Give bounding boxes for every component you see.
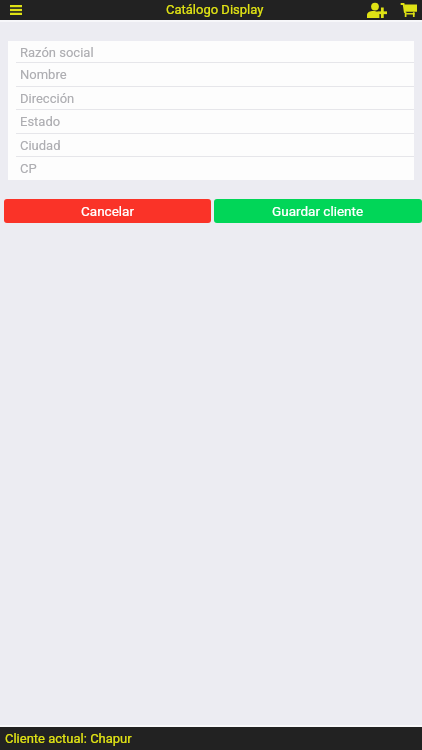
staticText: Ciudad (20, 138, 61, 153)
button[interactable]: CP (8, 157, 414, 180)
button[interactable]: Menu (6, 0, 26, 20)
button[interactable]: Add client (364, 0, 389, 20)
staticText: Guardar cliente (272, 203, 364, 219)
button[interactable]: Cancelar (4, 199, 211, 223)
button[interactable]: Nombre (8, 63, 414, 86)
button[interactable]: Guardar cliente (214, 199, 422, 223)
button[interactable]: Razón social (8, 41, 414, 63)
staticText: Cancelar (81, 203, 135, 219)
button[interactable]: Ciudad (8, 134, 414, 157)
staticText: Catálogo Display (166, 2, 264, 17)
staticText: Dirección (20, 91, 75, 106)
button[interactable]: Cart (395, 0, 422, 20)
staticText: Nombre (20, 67, 67, 82)
button[interactable]: Cliente actual: Chapur (0, 727, 422, 750)
staticText: Estado (20, 114, 61, 129)
button[interactable]: Dirección (8, 87, 414, 110)
staticText: Razón social (20, 45, 94, 60)
staticText: Cliente actual: Chapur (5, 731, 132, 746)
staticText: CP (20, 161, 37, 176)
button[interactable]: Estado (8, 110, 414, 133)
